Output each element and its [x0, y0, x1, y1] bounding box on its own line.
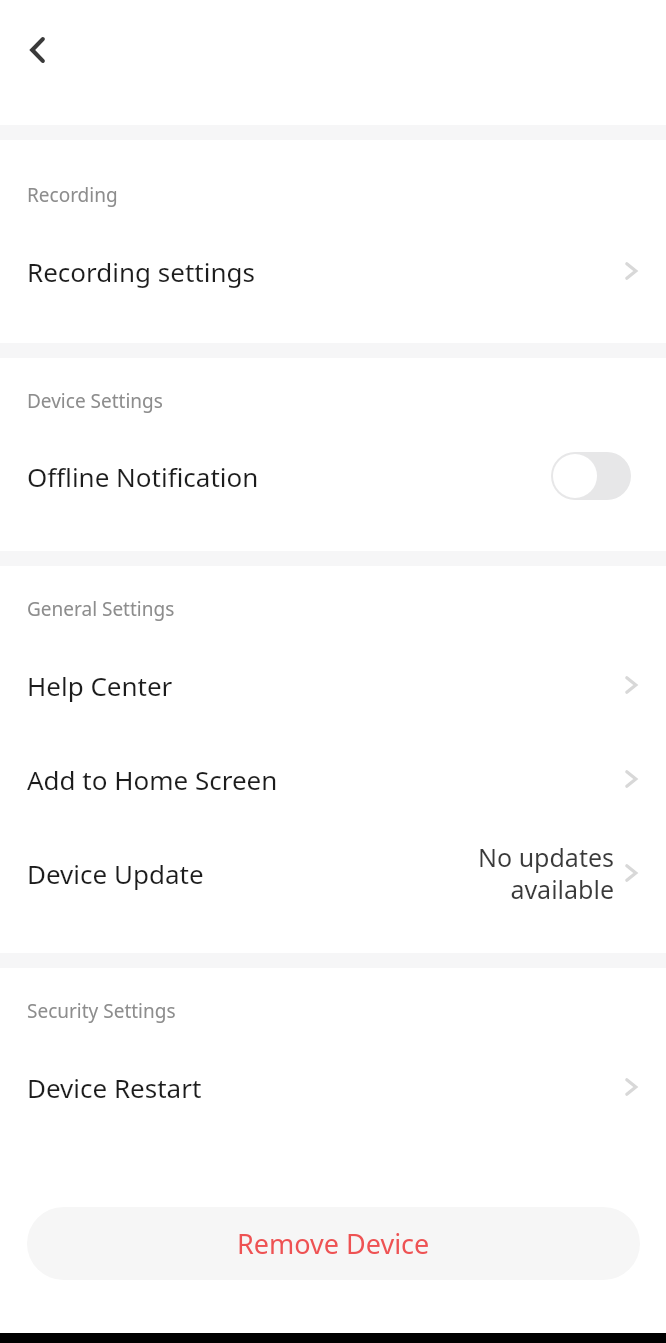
button[interactable]: Offline Notification toggle, off	[551, 452, 631, 500]
staticText: Security Settings	[27, 998, 176, 1024]
staticText: Help Center	[27, 668, 173, 703]
staticText: Device Settings	[27, 388, 163, 414]
staticText: Recording	[27, 182, 118, 208]
staticText: Device Restart	[27, 1070, 202, 1105]
button[interactable]: Back	[10, 22, 66, 78]
button[interactable]: Device Update	[0, 826, 666, 920]
button[interactable]: Remove Device	[27, 1207, 640, 1280]
staticText: No updates available	[444, 840, 614, 906]
button[interactable]: Help Center	[0, 638, 666, 732]
staticText: Recording settings	[27, 254, 255, 289]
staticText: Add to Home Screen	[27, 762, 278, 797]
button[interactable]: Device Restart	[0, 1040, 666, 1134]
button[interactable]: Add to Home Screen	[0, 732, 666, 826]
staticText: Remove Device	[237, 1225, 430, 1262]
button[interactable]: Recording settings	[0, 224, 666, 318]
staticText: Device Update	[27, 856, 204, 891]
staticText: General Settings	[27, 596, 175, 622]
button[interactable]: Offline Notification	[0, 429, 666, 523]
staticText: Offline Notification	[27, 459, 259, 494]
